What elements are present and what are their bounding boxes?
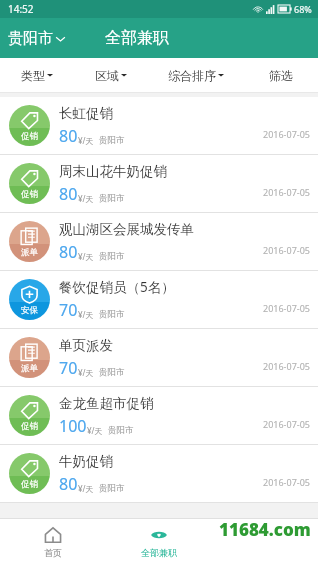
staticText: ¥/天: [78, 367, 94, 378]
staticText: ¥/天: [78, 309, 94, 320]
button[interactable]: 促销: [0, 97, 318, 155]
button[interactable]: 安保: [0, 271, 318, 329]
staticText: 贵阳市: [99, 135, 125, 146]
staticText: 全部兼职: [105, 28, 169, 48]
button[interactable]: 全部兼职: [106, 518, 212, 566]
staticText: ¥/天: [78, 193, 94, 204]
staticText: 2016-07-05: [263, 476, 310, 488]
staticText: 筛选: [269, 68, 293, 83]
staticText: 2016-07-05: [263, 244, 310, 256]
staticText: 类型: [21, 68, 45, 83]
staticText: 促销: [21, 189, 38, 200]
staticText: 餐饮促销员（5名）: [59, 278, 175, 296]
staticText: 周末山花牛奶促销: [59, 163, 167, 180]
staticText: 68%: [294, 3, 312, 15]
button[interactable]: 综合排序: [149, 58, 243, 92]
button[interactable]: 促销: [0, 155, 318, 213]
staticText: 派单: [21, 247, 38, 258]
staticText: 贵阳市: [99, 309, 125, 320]
staticText: 2016-07-05: [263, 360, 310, 372]
staticText: 观山湖区会展城发传单: [59, 221, 194, 238]
staticText: 贵阳市: [99, 193, 125, 204]
staticText: 促销: [21, 479, 38, 490]
button[interactable]: 区域: [74, 58, 149, 92]
staticText: 贵阳市: [99, 483, 125, 494]
staticText: 促销: [21, 421, 38, 432]
staticText: 派单: [21, 363, 38, 374]
staticText: 全部兼职: [141, 547, 177, 558]
staticText: 贵阳市: [99, 251, 125, 262]
staticText: 80: [59, 125, 78, 147]
staticText: 安保: [21, 305, 38, 316]
button[interactable]: 派单: [0, 213, 318, 271]
button[interactable]: 首页: [0, 518, 106, 566]
button[interactable]: 促销: [0, 387, 318, 445]
staticText: 70: [59, 299, 78, 321]
staticText: 首页: [44, 547, 62, 558]
staticText: 促销: [21, 131, 38, 142]
staticText: 综合排序: [168, 68, 216, 83]
staticText: 区域: [95, 68, 119, 83]
staticText: 贵阳市: [8, 29, 53, 48]
staticText: ¥/天: [78, 135, 94, 146]
button[interactable]: 筛选: [243, 58, 318, 92]
staticText: 长虹促销: [59, 105, 113, 122]
staticText: 金龙鱼超市促销: [59, 395, 154, 412]
staticText: 14:52: [8, 2, 34, 16]
button[interactable]: 类型: [0, 58, 74, 92]
staticText: 100: [59, 415, 87, 437]
staticText: 2016-07-05: [263, 128, 310, 140]
staticText: 70: [59, 357, 78, 379]
staticText: 贵阳市: [108, 425, 134, 436]
staticText: 2016-07-05: [263, 302, 310, 314]
staticText: 2016-07-05: [263, 418, 310, 430]
button[interactable]: 派单: [0, 329, 318, 387]
staticText: ¥/天: [78, 483, 94, 494]
staticText: ¥/天: [87, 425, 103, 436]
staticText: 牛奶促销: [59, 453, 113, 470]
staticText: ¥/天: [78, 251, 94, 262]
button[interactable]: 贵阳市: [0, 25, 74, 52]
staticText: 80: [59, 183, 78, 205]
staticText: 贵阳市: [99, 367, 125, 378]
button[interactable]: 促销: [0, 445, 318, 503]
staticText: 单页派发: [59, 337, 113, 354]
staticText: 80: [59, 241, 78, 263]
staticText: 11684.com: [219, 518, 311, 541]
staticText: 80: [59, 473, 78, 495]
staticText: 2016-07-05: [263, 186, 310, 198]
